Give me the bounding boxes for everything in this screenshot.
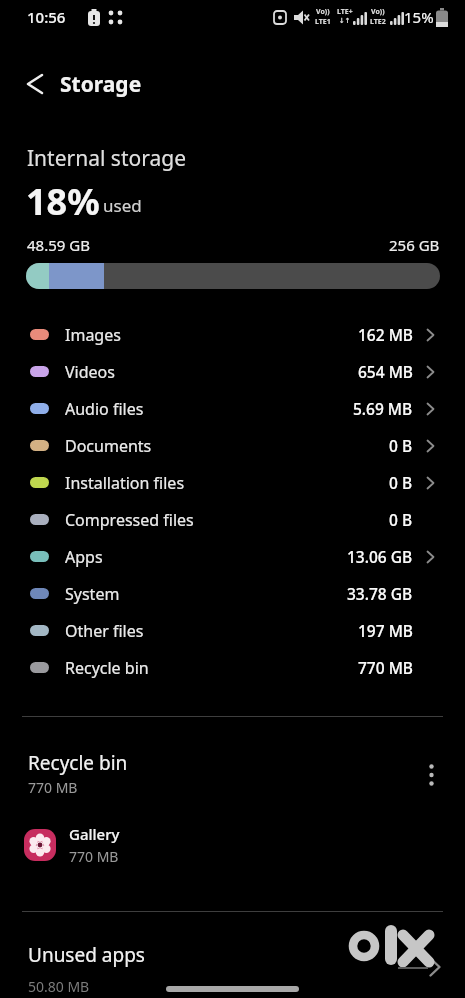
staticText: Images [65, 324, 121, 346]
staticText: Installation files [65, 472, 185, 494]
staticText: Vo)) [371, 7, 385, 17]
staticText: Audio files [65, 398, 144, 420]
button[interactable] [417, 758, 445, 792]
staticText: Internal storage [27, 144, 186, 173]
button[interactable]: Unused apps [0, 930, 465, 998]
staticText: 770 MB [358, 657, 413, 678]
staticText: 48.59 GB [27, 235, 90, 255]
staticText: Storage [60, 70, 142, 99]
staticText: Gallery [69, 824, 120, 844]
button[interactable]: Compressed files [0, 501, 465, 538]
staticText: Recycle bin [28, 750, 128, 776]
button[interactable]: System [0, 575, 465, 612]
staticText: Compressed files [65, 509, 194, 531]
staticText: LTE1 [315, 17, 331, 27]
staticText: Videos [65, 361, 115, 383]
staticText: 15% [404, 7, 434, 27]
staticText: 5.69 MB [353, 398, 413, 419]
staticText: 770 MB [69, 847, 119, 866]
button[interactable]: Documents [0, 427, 465, 464]
staticText: Apps [65, 546, 103, 568]
staticText: 654 MB [358, 361, 413, 382]
staticText: used [103, 194, 142, 217]
staticText: 33.78 GB [347, 583, 413, 604]
staticText: Documents [65, 435, 152, 457]
staticText: Recycle bin [65, 657, 149, 679]
button[interactable]: Audio files [0, 390, 465, 427]
staticText: 256 GB [389, 235, 440, 255]
button[interactable]: Videos [0, 353, 465, 390]
staticText: 13.06 GB [347, 546, 413, 567]
staticText: 10:56 [27, 7, 66, 27]
button[interactable]: Apps [0, 538, 465, 575]
staticText: ↓↑ [339, 17, 351, 25]
staticText: 162 MB [358, 324, 413, 345]
staticText: 0 B [389, 435, 413, 456]
staticText: 0 B [389, 472, 413, 493]
button[interactable]: Images [0, 316, 465, 353]
staticText: 197 MB [358, 620, 413, 641]
button[interactable]: Recycle bin [0, 649, 465, 686]
staticText: Other files [65, 620, 144, 642]
staticText: Vo)) [316, 7, 330, 17]
staticText: Unused apps [28, 942, 145, 968]
staticText: LTE+ [337, 7, 353, 17]
staticText: 770 MB [28, 778, 78, 797]
staticText: 18% [26, 177, 100, 226]
button[interactable]: Gallery [0, 822, 465, 868]
button[interactable]: Other files [0, 612, 465, 649]
staticText: 50.80 MB [28, 977, 90, 996]
staticText: LTE2 [370, 17, 386, 27]
staticText: System [65, 583, 120, 605]
button[interactable]: Installation files [0, 464, 465, 501]
staticText: 0 B [389, 509, 413, 530]
button[interactable] [18, 66, 54, 102]
